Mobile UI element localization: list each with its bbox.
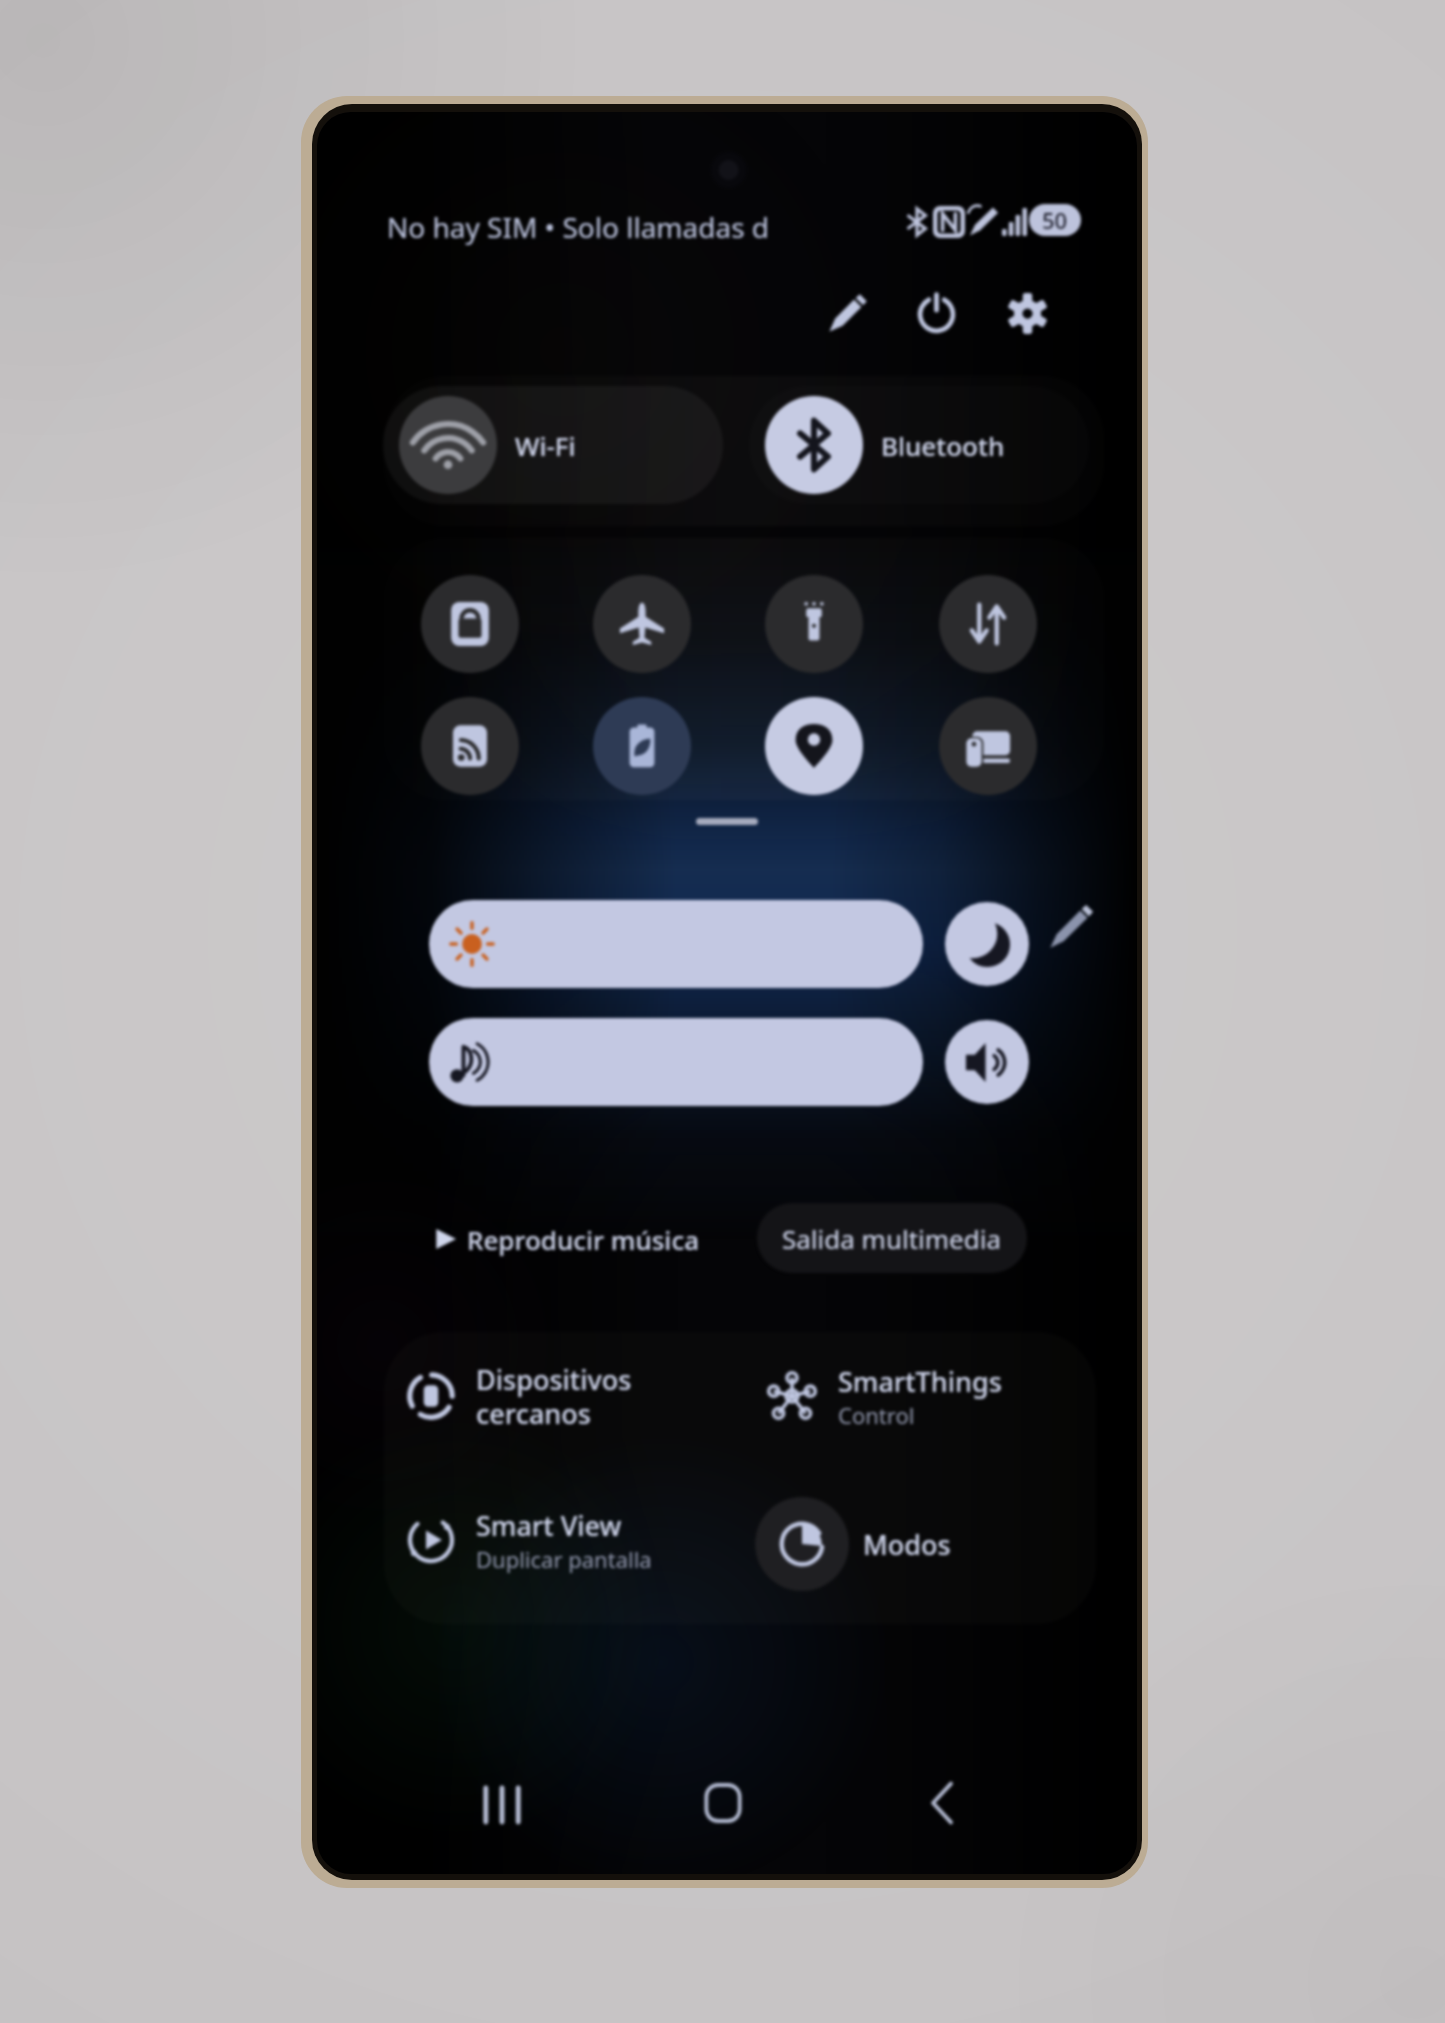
button[interactable]: Power saving [593,697,691,795]
button[interactable]: SmartThings [760,1342,1060,1450]
button[interactable]: Edit [810,276,884,350]
button[interactable]: Mobile data [939,575,1037,673]
button[interactable]: Flashlight [765,575,863,673]
button[interactable]: Screen lock [421,575,519,673]
button[interactable]: Power [899,276,973,350]
button[interactable]: Wi-Fi [383,386,723,504]
button[interactable]: Recents [457,1760,547,1850]
staticText: Dispositivos cercanos [476,1361,632,1432]
button[interactable]: Airplane mode [593,575,691,673]
button[interactable]: Modos [755,1492,1035,1596]
button[interactable]: Brightness [429,900,923,988]
staticText: Duplicar pantalla [476,1544,652,1574]
button[interactable]: Sound [945,1020,1029,1104]
button[interactable]: Link to Windows [939,697,1037,795]
staticText: No hay SIM • Solo llamadas d [387,208,770,246]
staticText: 50 [1042,205,1068,235]
staticText: SmartThings [838,1363,1002,1400]
button[interactable]: Do not disturb [945,902,1029,986]
staticText: Salida multimedia [782,1221,1002,1256]
button[interactable]: Back [897,1758,987,1848]
staticText: Control [838,1400,915,1430]
button[interactable]: Smart View [398,1490,728,1590]
button[interactable]: Salida multimedia [757,1203,1027,1273]
staticText: Bluetooth [881,428,1005,463]
button[interactable]: Location [765,697,863,795]
button[interactable]: Media volume [429,1018,923,1106]
staticText: Reproducir música [467,1222,700,1257]
button[interactable]: Settings [990,276,1064,350]
button[interactable]: Edit brightness [1036,892,1106,962]
button[interactable]: Smart View [421,697,519,795]
button[interactable]: Reproducir música [423,1203,712,1275]
button[interactable]: Bluetooth [749,386,1089,504]
staticText: Wi-Fi [515,428,576,463]
staticText: Smart View [476,1507,622,1544]
button[interactable]: Home [678,1758,768,1848]
staticText: Modos [863,1526,951,1563]
button[interactable]: Dispositivos cercanos [398,1342,728,1450]
